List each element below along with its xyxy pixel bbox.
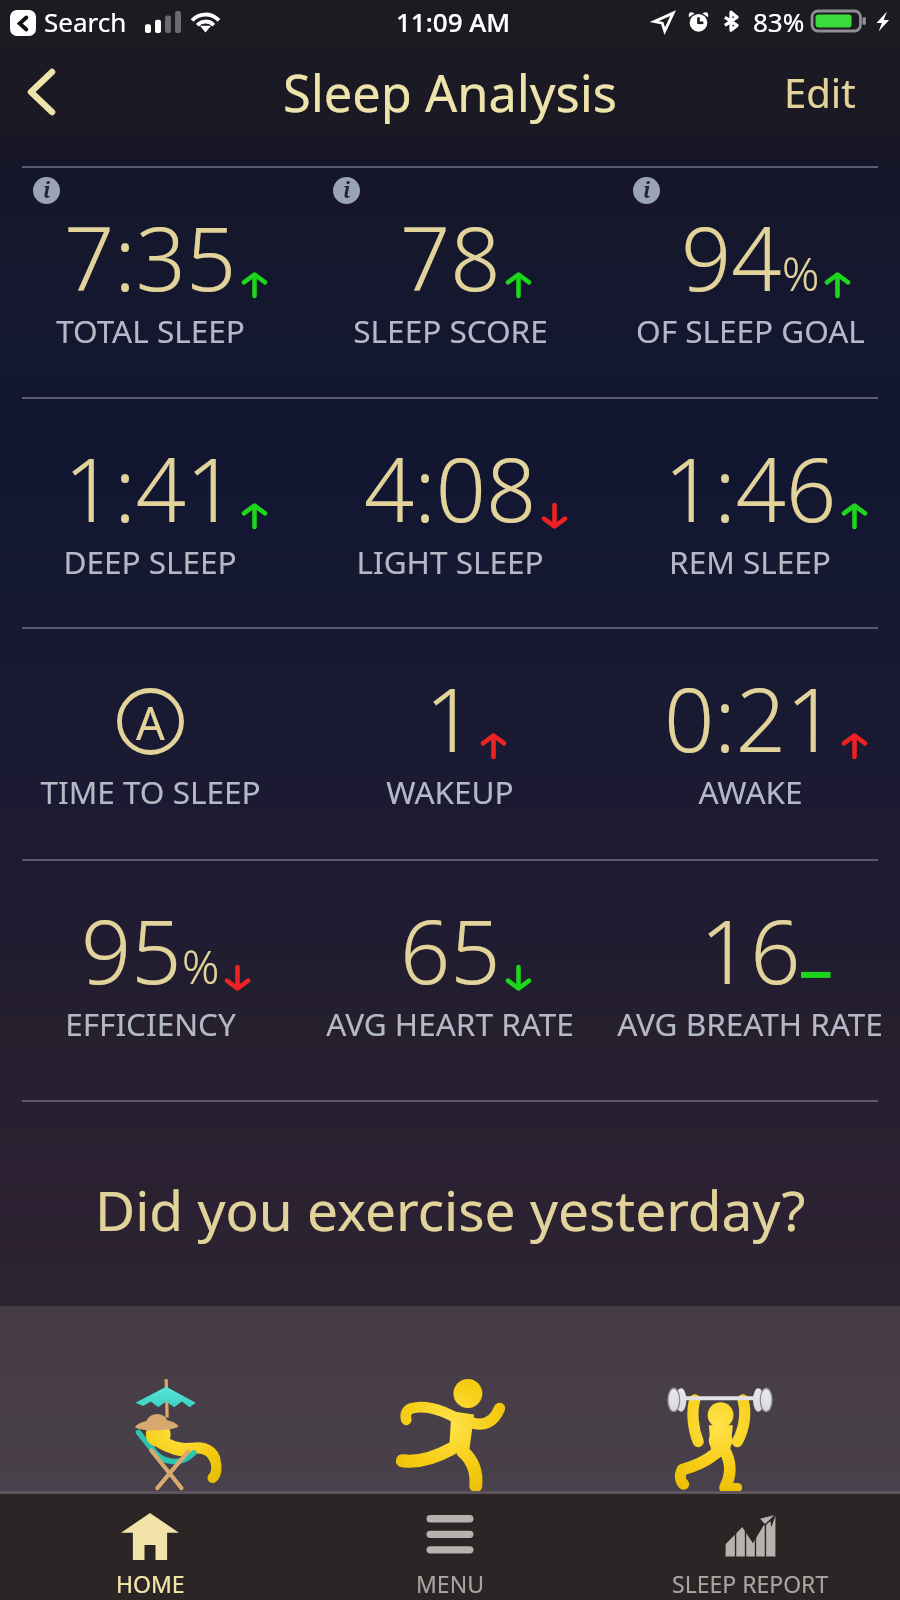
button[interactable]: No exercise yesterday xyxy=(0,1309,300,1493)
button[interactable]: 65 xyxy=(300,859,600,1100)
staticText: AVG BREATH RATE xyxy=(617,1002,883,1045)
button[interactable]: Info xyxy=(600,166,900,397)
staticText: 1:46 xyxy=(664,428,837,548)
button[interactable]: Light exercise yesterday xyxy=(300,1309,600,1493)
staticText: 0:21 xyxy=(664,658,837,778)
button[interactable]: 0:21 xyxy=(600,627,900,859)
button[interactable]: Info xyxy=(633,177,660,204)
staticText: TIME TO SLEEP xyxy=(40,770,261,813)
staticText: 7:35 xyxy=(64,197,237,317)
staticText: 65 xyxy=(400,890,501,1010)
staticText: AVG HEART RATE xyxy=(326,1002,574,1045)
button[interactable]: Info xyxy=(0,166,300,397)
button[interactable]: Heavy exercise yesterday xyxy=(600,1309,900,1493)
staticText: i xyxy=(43,177,51,203)
button[interactable]: 1:41 xyxy=(0,397,300,627)
staticText: HOME xyxy=(116,1568,185,1599)
staticText: EFFICIENCY xyxy=(65,1002,236,1045)
button[interactable]: 16 xyxy=(600,859,900,1100)
staticText: Did you exercise yesterday? xyxy=(95,1172,806,1247)
button[interactable]: Back xyxy=(7,58,75,126)
button[interactable]: Back to Search xyxy=(10,10,36,36)
button[interactable]: HOME xyxy=(0,1494,300,1600)
button[interactable]: SLEEP REPORT xyxy=(600,1494,900,1600)
button[interactable]: 1 xyxy=(300,627,600,859)
staticText: WAKEUP xyxy=(386,770,514,813)
staticText: % xyxy=(182,935,220,998)
staticText: 1:41 xyxy=(64,428,237,548)
staticText: i xyxy=(343,177,351,203)
button[interactable]: MENU xyxy=(300,1494,600,1600)
staticText: A xyxy=(136,692,165,753)
staticText: SLEEP REPORT xyxy=(672,1568,829,1599)
staticText: Edit xyxy=(784,65,856,119)
staticText: TOTAL SLEEP xyxy=(56,309,245,352)
staticText: 94 xyxy=(681,197,782,317)
staticText: 16 xyxy=(700,890,801,1010)
staticText: OF SLEEP GOAL xyxy=(636,309,865,352)
staticText: % xyxy=(782,242,820,305)
button[interactable]: 4:08 xyxy=(300,397,600,627)
staticText: MENU xyxy=(416,1568,484,1599)
staticText: AWAKE xyxy=(698,770,803,813)
staticText: Sleep Analysis xyxy=(283,58,617,127)
button[interactable]: Info xyxy=(33,177,60,204)
staticText: DEEP SLEEP xyxy=(63,540,237,583)
staticText: LIGHT SLEEP xyxy=(356,540,544,583)
staticText: i xyxy=(643,177,651,203)
button[interactable]: Info xyxy=(333,177,360,204)
staticText: 1 xyxy=(425,658,476,778)
button[interactable]: 1:46 xyxy=(600,397,900,627)
staticText: SLEEP SCORE xyxy=(353,309,548,352)
staticText: Search xyxy=(44,4,127,39)
button[interactable]: 95 xyxy=(0,859,300,1100)
button[interactable]: Info xyxy=(300,166,600,397)
button[interactable]: Edit xyxy=(754,51,900,133)
staticText: 95 xyxy=(81,890,182,1010)
staticText: 83% xyxy=(753,4,805,39)
staticText: 11:09 AM xyxy=(396,4,511,39)
staticText: REM SLEEP xyxy=(669,540,831,583)
button[interactable]: A xyxy=(0,627,300,859)
staticText: 78 xyxy=(400,197,501,317)
staticText: 4:08 xyxy=(364,428,537,548)
